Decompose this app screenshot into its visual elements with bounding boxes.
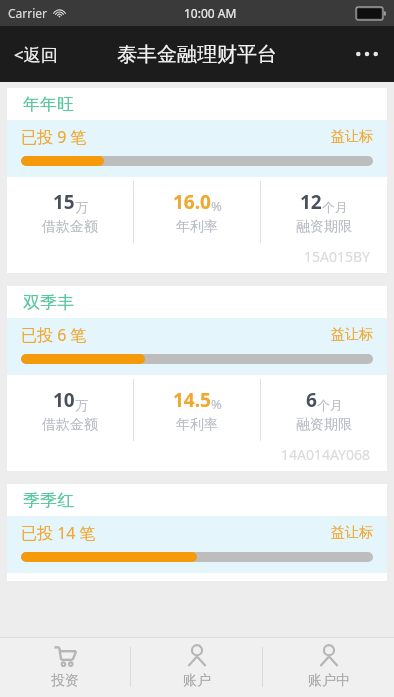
staticText: % <box>211 197 222 215</box>
staticText: 个月 <box>322 199 348 215</box>
button[interactable]: 账户中 <box>263 637 394 697</box>
staticText: 14A014AY068 <box>281 445 371 464</box>
staticText: <返回 <box>14 43 58 66</box>
staticText: 万 <box>75 397 88 413</box>
staticText: 双季丰 <box>23 292 74 313</box>
staticText: 融资期限 <box>296 416 352 434</box>
staticText: 融资期限 <box>296 218 352 236</box>
staticText: 泰丰金融理财平台 <box>117 42 277 67</box>
staticText: 10 <box>53 387 75 413</box>
staticText: 10:00 AM <box>184 5 237 21</box>
staticText: 借款金额 <box>42 218 98 236</box>
button[interactable]: 年年旺 <box>7 88 387 273</box>
staticText: 益让标 <box>331 128 373 146</box>
staticText: 年年旺 <box>23 94 74 115</box>
button[interactable]: 账户 <box>131 637 262 697</box>
staticText: 借款金额 <box>42 416 98 434</box>
staticText: 12 <box>300 189 322 215</box>
staticText: 账户中 <box>308 672 350 690</box>
button[interactable]: <返回 <box>0 31 72 78</box>
button[interactable]: More options <box>340 35 394 73</box>
staticText: 6 <box>306 387 317 413</box>
staticText: 账户 <box>183 672 211 690</box>
staticText: 已投 9 笔 <box>21 126 87 148</box>
staticText: 益让标 <box>331 326 373 344</box>
staticText: 益让标 <box>331 524 373 542</box>
button[interactable]: 季季红 <box>7 484 387 581</box>
staticText: 已投 6 笔 <box>21 324 87 346</box>
staticText: 15A015BY <box>304 247 371 266</box>
staticText: 万 <box>75 199 88 215</box>
staticText: 年利率 <box>176 416 218 434</box>
staticText: 14.5 <box>173 387 211 413</box>
staticText: 15 <box>53 189 75 215</box>
button[interactable]: 双季丰 <box>7 286 387 471</box>
staticText: 16.0 <box>173 189 211 215</box>
staticText: 已投 14 笔 <box>21 522 96 544</box>
staticText: % <box>211 395 222 413</box>
staticText: Carrier <box>8 5 48 21</box>
staticText: 年利率 <box>176 218 218 236</box>
staticText: 个月 <box>317 397 343 413</box>
staticText: 季季红 <box>23 490 74 511</box>
staticText: 投资 <box>51 672 79 690</box>
button[interactable]: 投资 <box>0 637 130 697</box>
